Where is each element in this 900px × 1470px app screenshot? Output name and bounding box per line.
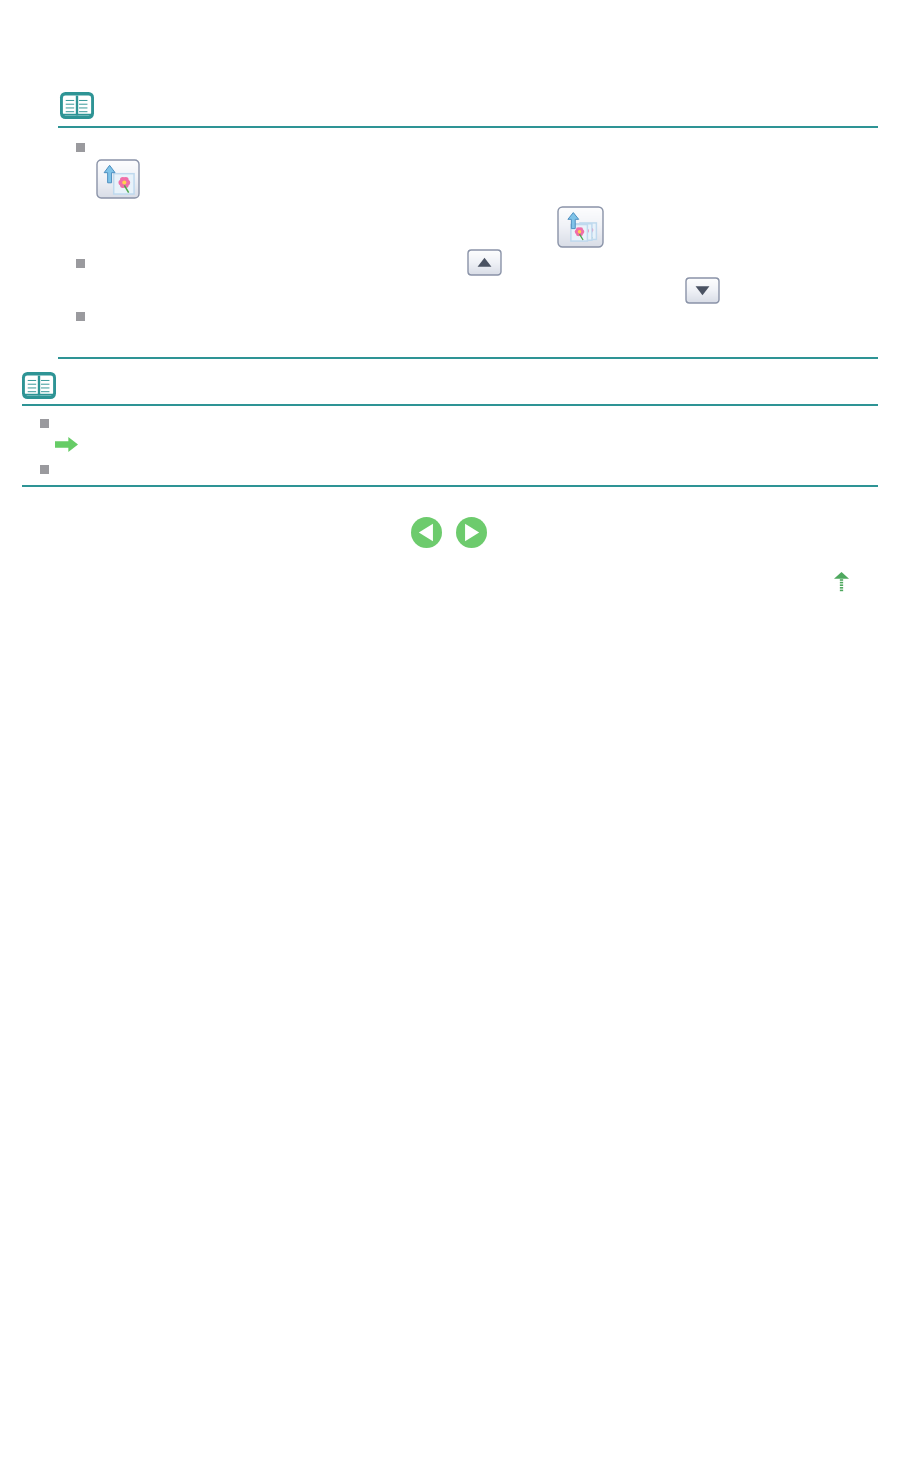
other: Note section [22,372,56,399]
other: Note section [60,92,94,119]
button[interactable]: Move up [468,250,501,275]
button[interactable]: Import multiple images [558,207,603,247]
button[interactable]: Page top [834,572,849,592]
button[interactable]: Next page [456,517,487,548]
button[interactable]: Import one image [97,160,139,198]
button[interactable]: Related link [55,437,78,452]
button[interactable]: Previous page [411,517,442,548]
button[interactable]: Move down [686,278,719,303]
